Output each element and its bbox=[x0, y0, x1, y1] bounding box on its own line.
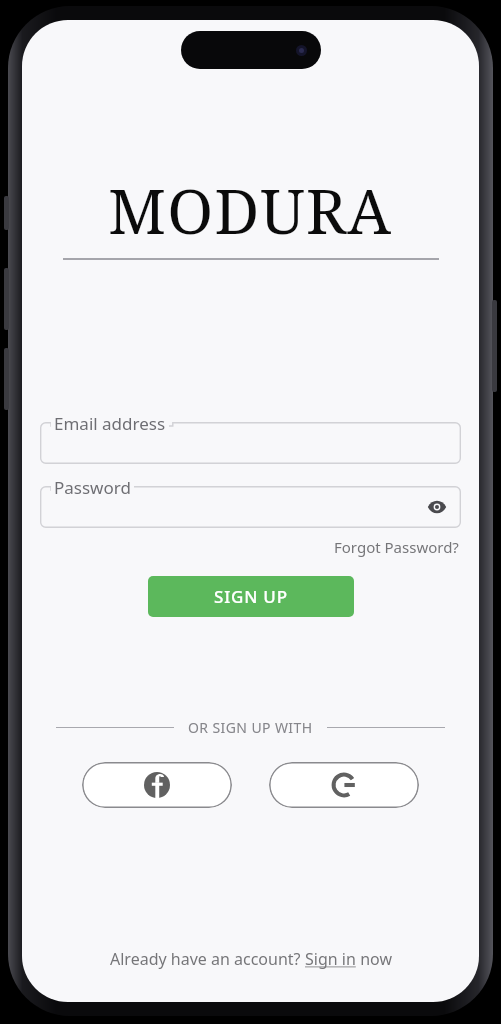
button[interactable]: Email address bbox=[40, 412, 461, 464]
button[interactable]: Sign up with Facebook bbox=[82, 762, 232, 808]
button[interactable]: Sign in bbox=[305, 948, 356, 970]
staticText: MODURA bbox=[108, 168, 393, 252]
staticText: OR SIGN UP WITH bbox=[188, 718, 313, 737]
staticText: Already have an account? bbox=[110, 948, 305, 970]
button[interactable]: Password bbox=[40, 476, 461, 528]
staticText: SIGN UP bbox=[214, 585, 288, 608]
button[interactable]: Show password bbox=[421, 491, 453, 523]
button[interactable]: Sign up with Google bbox=[269, 762, 419, 808]
button[interactable]: Forgot Password? bbox=[332, 534, 461, 560]
staticText: Sign in bbox=[305, 948, 356, 970]
staticText: Password bbox=[54, 476, 131, 499]
staticText: Email address bbox=[54, 412, 166, 435]
staticText: now bbox=[356, 948, 392, 970]
button[interactable]: SIGN UP bbox=[148, 576, 354, 617]
staticText: Forgot Password? bbox=[334, 537, 459, 557]
